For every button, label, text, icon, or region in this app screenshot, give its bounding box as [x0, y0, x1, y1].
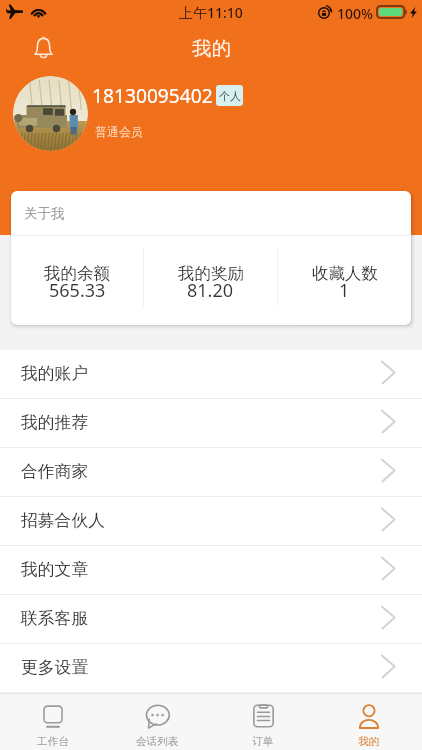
- staticText: 联系客服: [21, 608, 89, 629]
- staticText: 招募合伙人: [21, 510, 105, 531]
- staticText: 更多设置: [21, 657, 89, 678]
- button[interactable]: 我的推荐: [0, 399, 422, 447]
- button[interactable]: 招募合伙人: [0, 497, 422, 545]
- staticText: 个人: [219, 89, 241, 103]
- staticText: 收藏人数: [312, 263, 378, 284]
- staticText: 我的账户: [21, 363, 89, 384]
- button[interactable]: 会话列表: [105, 694, 210, 750]
- button[interactable]: 工作台: [0, 694, 105, 750]
- button[interactable]: 我的: [316, 694, 422, 750]
- button[interactable]: 合作商家: [0, 448, 422, 496]
- staticText: 我的文章: [21, 559, 89, 580]
- button[interactable]: 我的余额: [11, 236, 143, 325]
- staticText: 我的: [192, 36, 231, 60]
- button[interactable]: 我的文章: [0, 546, 422, 594]
- staticText: 工作台: [37, 735, 69, 748]
- staticText: 关于我: [24, 205, 65, 222]
- staticText: 我的推荐: [21, 412, 89, 433]
- button[interactable]: 个人: [216, 85, 243, 106]
- button[interactable]: Notifications: [25, 30, 61, 66]
- staticText: 会话列表: [136, 735, 179, 748]
- button[interactable]: 联系客服: [0, 595, 422, 643]
- staticText: 100%: [337, 4, 373, 23]
- button[interactable]: 更多设置: [0, 644, 422, 692]
- staticText: 合作商家: [21, 461, 89, 482]
- staticText: 我的余额: [44, 263, 110, 284]
- button[interactable]: 订单: [210, 694, 316, 750]
- staticText: 18130095402: [92, 82, 213, 108]
- button[interactable]: 我的账户: [0, 350, 422, 398]
- staticText: 普通会员: [95, 124, 143, 139]
- button[interactable]: Profile photo: [13, 76, 88, 151]
- staticText: 我的: [358, 735, 380, 748]
- staticText: 1: [339, 278, 350, 303]
- staticText: 订单: [252, 735, 274, 748]
- staticText: 565.33: [49, 278, 106, 303]
- button[interactable]: 我的奖励: [144, 236, 277, 325]
- button[interactable]: 收藏人数: [278, 236, 411, 325]
- staticText: 我的奖励: [178, 263, 244, 284]
- staticText: 上午11:10: [179, 3, 243, 22]
- staticText: 81.20: [187, 278, 234, 303]
